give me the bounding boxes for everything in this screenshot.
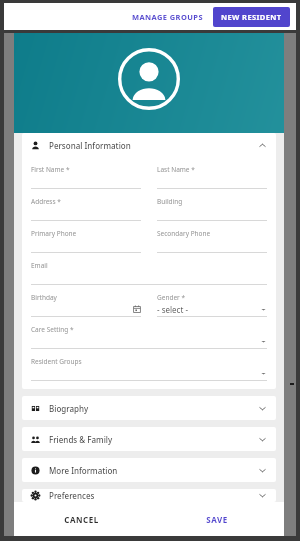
button[interactable]: More Information — [22, 458, 276, 482]
button[interactable]: SAVE — [149, 502, 284, 536]
other: Expand Friends & Family — [258, 435, 267, 444]
button[interactable]: Secondary Phone — [157, 221, 267, 253]
staticText: CANCEL — [64, 514, 99, 525]
button[interactable]: Personal Information — [22, 133, 276, 157]
staticText: Personal Information — [49, 140, 131, 151]
button[interactable]: Building — [157, 189, 267, 221]
other: Collapse Personal Information — [258, 141, 267, 150]
button[interactable]: Biography — [22, 396, 276, 420]
other: Expand More Information — [258, 466, 267, 475]
staticText: Address * — [31, 197, 61, 206]
staticText: NEW RESIDENT — [221, 12, 282, 22]
staticText: Secondary Phone — [157, 229, 211, 238]
staticText: Preferences — [49, 490, 95, 501]
button[interactable]: Friends & Family — [22, 427, 276, 451]
staticText: More Information — [49, 465, 118, 476]
staticText: Resident Groups — [31, 357, 82, 366]
other: Expand Preferences — [258, 491, 267, 500]
staticText: Friends & Family — [49, 434, 113, 445]
staticText: Birthday — [31, 293, 57, 302]
button[interactable]: Birthday — [31, 285, 141, 317]
button[interactable]: NEW RESIDENT — [213, 7, 290, 27]
staticText: Building — [157, 197, 183, 206]
button[interactable]: Preferences — [22, 489, 276, 502]
staticText: Care Setting * — [31, 325, 74, 334]
button[interactable]: Primary Phone — [31, 221, 141, 253]
button[interactable]: Last Name * — [157, 157, 267, 189]
button[interactable]: Address * — [31, 189, 141, 221]
staticText: Last Name * — [157, 165, 195, 174]
button[interactable]: MANAGE GROUPS — [127, 8, 208, 26]
staticText: Email — [31, 261, 48, 270]
button[interactable]: Care Setting * — [31, 317, 267, 349]
staticText: Gender * — [157, 293, 186, 302]
button[interactable]: Resident Groups — [31, 349, 267, 381]
button[interactable]: CANCEL — [14, 502, 149, 536]
staticText: Primary Phone — [31, 229, 77, 238]
staticText: - select - — [157, 304, 188, 315]
staticText: SAVE — [206, 514, 228, 525]
staticText: MANAGE GROUPS — [132, 12, 203, 22]
staticText: First Name * — [31, 165, 70, 174]
button[interactable]: Email — [31, 253, 267, 285]
button[interactable]: First Name * — [31, 157, 141, 189]
staticText: Biography — [49, 403, 89, 414]
button[interactable]: Gender * — [157, 285, 267, 317]
other: Expand Biography — [258, 404, 267, 413]
